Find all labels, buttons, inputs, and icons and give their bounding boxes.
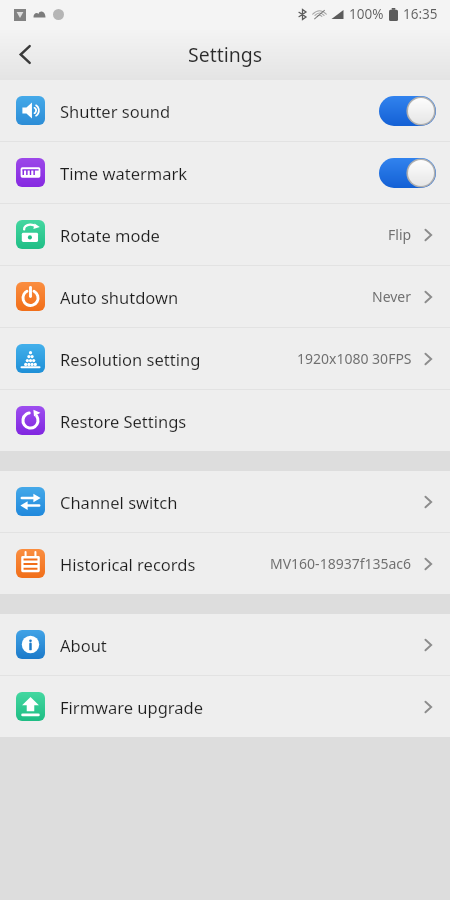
- staticText: Historical records: [60, 553, 196, 575]
- staticText: About: [60, 634, 107, 656]
- staticText: MV160-18937f135ac6: [270, 554, 412, 573]
- button[interactable]: About: [0, 614, 450, 675]
- button[interactable]: Resolution setting: [0, 328, 450, 389]
- staticText: Channel switch: [60, 491, 178, 513]
- staticText: Restore Settings: [60, 410, 187, 432]
- staticText: Rotate mode: [60, 224, 160, 246]
- staticText: Auto shutdown: [60, 286, 179, 308]
- button[interactable]: Toggle on: [379, 96, 436, 126]
- button[interactable]: Restore Settings: [0, 390, 450, 451]
- button[interactable]: Shutter sound: [0, 80, 450, 141]
- staticText: 16:35: [403, 5, 438, 23]
- staticText: Shutter sound: [60, 100, 171, 122]
- staticText: Firmware upgrade: [60, 696, 204, 718]
- button[interactable]: Firmware upgrade: [0, 676, 450, 737]
- staticText: 100%: [349, 5, 384, 23]
- staticText: Time watermark: [60, 162, 188, 184]
- staticText: Settings: [188, 41, 263, 68]
- button[interactable]: Historical records: [0, 533, 450, 594]
- button[interactable]: Time watermark: [0, 142, 450, 203]
- staticText: 1920x1080 30FPS: [297, 349, 412, 368]
- button[interactable]: Channel switch: [0, 471, 450, 532]
- staticText: Resolution setting: [60, 348, 201, 370]
- button[interactable]: Back: [0, 29, 50, 79]
- button[interactable]: Rotate mode: [0, 204, 450, 265]
- staticText: Never: [372, 287, 412, 306]
- staticText: Flip: [388, 225, 412, 244]
- button[interactable]: Toggle on: [379, 158, 436, 188]
- button[interactable]: Auto shutdown: [0, 266, 450, 327]
